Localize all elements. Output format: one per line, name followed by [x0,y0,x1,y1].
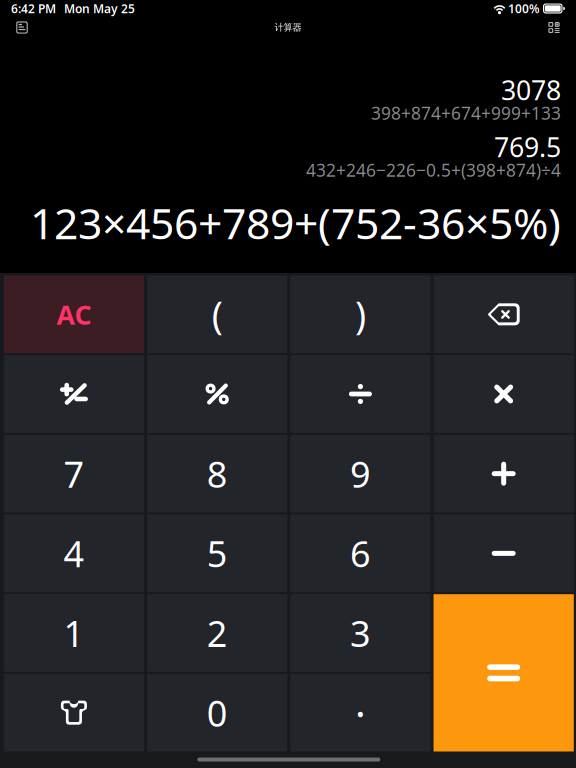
staticText: ) [355,289,366,339]
button[interactable]: · [290,674,430,751]
button[interactable]: 9 [290,435,430,512]
button[interactable]: 2 [147,594,287,672]
staticText: 0 [207,689,228,737]
button[interactable]: ) [290,275,430,353]
staticText: 6 [350,529,371,577]
staticText: 7 [63,450,84,498]
button[interactable]: 5 [147,514,287,592]
staticText: 123×456+789+(752-36×5%) [30,194,561,251]
staticText: 3078 [501,72,561,108]
button[interactable]: Theme [4,674,144,751]
button[interactable]: 4 [4,514,144,592]
button[interactable]: Multiply [434,355,574,433]
staticText: · [355,686,366,739]
staticText: 8 [207,450,228,498]
staticText: 769.5 [494,129,561,165]
button[interactable]: 7 [4,435,144,512]
staticText: 2 [207,609,228,657]
button[interactable]: History [6,17,38,38]
button[interactable]: Percent [147,355,287,433]
button[interactable]: 1 [4,594,144,672]
button[interactable]: AC [4,275,144,353]
staticText: 5 [207,529,228,577]
staticText: 9 [350,450,371,498]
staticText: 1 [63,609,84,657]
button[interactable]: Equals [434,594,574,751]
button[interactable]: Plus [434,435,574,512]
staticText: Mon May 25 [64,0,135,16]
button[interactable]: 6 [290,514,430,592]
button[interactable]: 8 [147,435,287,512]
button[interactable]: Layout [538,17,570,38]
staticText: ( [212,289,223,339]
staticText: 432+246−226−0.5+(398+874)÷4 [306,158,561,181]
staticText: 4 [63,529,84,577]
button[interactable]: Delete [434,275,574,353]
staticText: 3 [350,609,371,657]
button[interactable]: 0 [147,674,287,751]
staticText: 398+874+674+999+133 [371,101,561,124]
staticText: AC [56,297,91,332]
staticText: 计算器 [274,22,301,33]
button[interactable]: Divide [290,355,430,433]
button[interactable]: 3 [290,594,430,672]
button[interactable]: ( [147,275,287,353]
button[interactable]: Plus or minus [4,355,144,433]
staticText: 6:42 PM [11,0,56,16]
staticText: 100% [508,0,540,16]
button[interactable]: Minus [434,514,574,592]
